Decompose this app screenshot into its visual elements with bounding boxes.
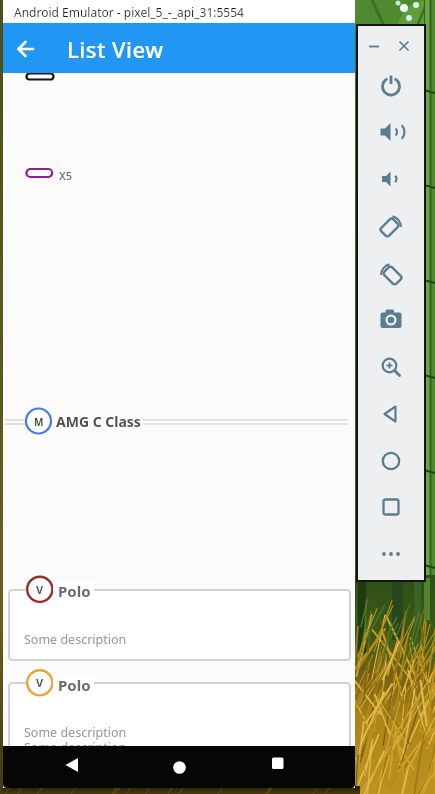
staticText: X5: [59, 168, 73, 183]
button[interactable]: [373, 301, 409, 337]
staticText: V: [36, 582, 44, 597]
button[interactable]: [3, 159, 350, 195]
staticText: Polo: [58, 581, 91, 601]
staticText: List View: [67, 34, 164, 64]
staticText: AMG C Class: [56, 412, 141, 431]
staticText: M: [34, 415, 44, 429]
button[interactable]: [363, 35, 385, 57]
staticText: Android Emulator - pixel_5_-_api_31:5554: [14, 4, 244, 20]
button[interactable]: [373, 256, 409, 292]
button[interactable]: [373, 208, 409, 244]
staticText: Some description: [24, 724, 127, 741]
button[interactable]: [393, 35, 415, 57]
button[interactable]: [373, 349, 409, 385]
button[interactable]: [373, 489, 409, 525]
staticText: Some description: [24, 739, 127, 746]
button[interactable]: [7, 31, 43, 67]
staticText: Polo: [58, 675, 91, 695]
button[interactable]: [53, 748, 91, 786]
button[interactable]: [160, 748, 198, 786]
button[interactable]: [3, 403, 350, 439]
button[interactable]: [8, 682, 351, 746]
staticText: V: [36, 675, 44, 690]
button[interactable]: [373, 536, 409, 572]
button[interactable]: [373, 114, 409, 150]
button[interactable]: [373, 396, 409, 432]
button[interactable]: [373, 443, 409, 479]
button[interactable]: [8, 589, 351, 661]
button[interactable]: [373, 161, 409, 197]
button[interactable]: [259, 748, 297, 786]
staticText: Some description: [24, 631, 127, 648]
button[interactable]: [373, 68, 409, 104]
